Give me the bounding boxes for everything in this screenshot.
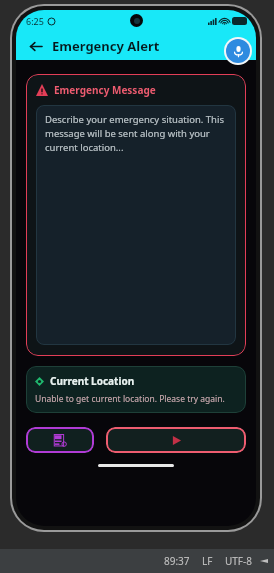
staticText: Unable to get current location. Please t… [35,393,225,405]
button[interactable]: Back [24,35,46,57]
staticText: LF [202,554,213,568]
button[interactable]: Voice input [226,39,250,63]
staticText: Describe your emergency situation. This … [45,113,227,154]
button[interactable]: Describe your emergency situation. This … [36,105,236,345]
staticText: 89:37 [164,554,190,568]
staticText: Emergency Alert [52,37,160,55]
staticText: 6:25 [26,15,44,27]
button[interactable]: Current Location [26,366,246,413]
button[interactable]: Send emergency alert [106,427,246,453]
button[interactable]: Saved messages [26,427,94,453]
staticText: Current Location [50,374,135,388]
staticText: UTF-8 [225,554,252,568]
staticText: Emergency Message [54,83,156,97]
